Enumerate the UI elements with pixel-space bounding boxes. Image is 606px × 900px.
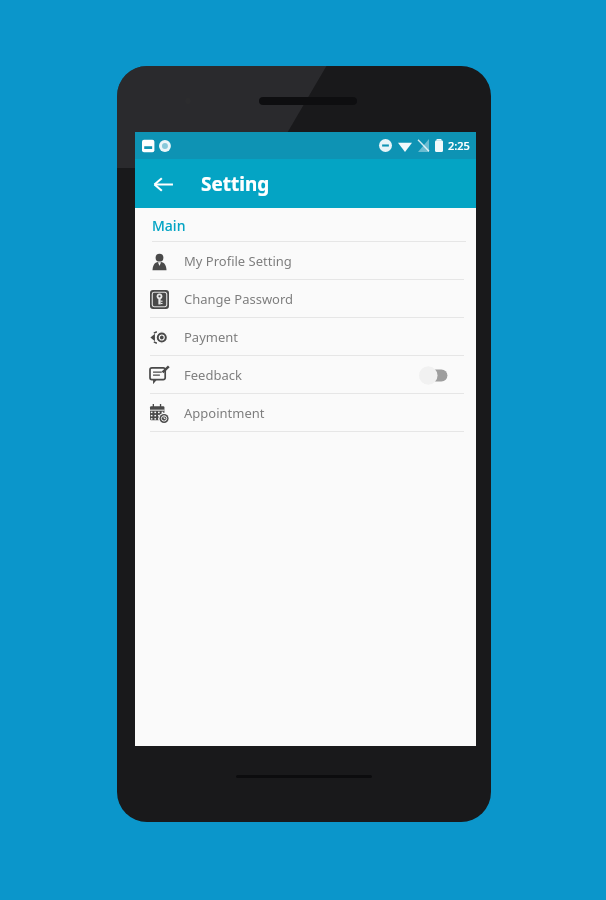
- button[interactable]: Payment: [135, 318, 476, 356]
- button[interactable]: Back: [143, 164, 183, 204]
- button[interactable]: Appointment: [135, 394, 476, 432]
- staticText: Appointment: [184, 404, 265, 422]
- staticText: 2:25: [448, 138, 470, 153]
- staticText: Main: [152, 216, 186, 235]
- staticText: Change Password: [184, 290, 294, 308]
- button[interactable]: Feedback: [135, 356, 476, 394]
- button[interactable]: Feedback toggle: [414, 362, 454, 388]
- staticText: Feedback: [184, 366, 242, 384]
- button[interactable]: My Profile Setting: [135, 242, 476, 280]
- staticText: My Profile Setting: [184, 252, 292, 270]
- staticText: Setting: [201, 171, 270, 197]
- staticText: Payment: [184, 328, 239, 346]
- button[interactable]: Change Password: [135, 280, 476, 318]
